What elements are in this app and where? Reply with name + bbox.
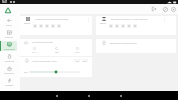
button[interactable]: DEVICE <box>20 16 92 35</box>
button[interactable]: Action 5 <box>57 24 61 28</box>
staticText: BEDROOM THERMOSTAT <box>110 42 137 45</box>
staticText: ROOMS <box>5 36 13 39</box>
staticText: OUTDOOR SENSOR <box>32 41 53 44</box>
staticText: SECURITY <box>4 72 14 75</box>
staticText: LIGHT DIMMING LAMP <box>32 60 57 63</box>
button[interactable]: Home <box>86 93 92 99</box>
staticText: 1013 <box>75 51 80 54</box>
staticText: DEVICE <box>24 22 31 24</box>
button[interactable]: Action 2 <box>39 24 43 28</box>
button[interactable]: CLIMATE <box>1 53 17 63</box>
button[interactable]: Do not disturb <box>162 6 168 12</box>
staticText: CLIMATE <box>5 60 14 63</box>
staticText: DEVICE <box>100 22 107 24</box>
button[interactable]: Action 3 <box>121 24 125 28</box>
button[interactable]: SECURITY <box>1 65 17 75</box>
button[interactable]: Home <box>3 5 12 14</box>
button[interactable]: LIGHT DIMMING LAMP <box>20 57 92 77</box>
staticText: LIVING ROOM CEILING BLINDS <box>35 18 69 21</box>
button[interactable]: Log out <box>151 6 157 12</box>
staticText: BACK <box>6 24 12 27</box>
staticText: 50% <box>24 71 28 74</box>
button[interactable]: 21°C <box>26 47 43 54</box>
staticText: ENERGY <box>5 84 14 87</box>
button[interactable]: Action 5 <box>133 24 137 28</box>
staticText: ON <box>76 60 79 62</box>
staticText: OFF <box>83 60 87 62</box>
button[interactable]: Action 1 <box>109 24 113 28</box>
button[interactable]: Settings <box>170 6 176 12</box>
button[interactable]: Back <box>54 93 60 99</box>
button[interactable]: LIGHTING <box>1 41 17 51</box>
button[interactable]: Recent apps <box>118 93 124 99</box>
button[interactable]: ON <box>74 59 80 62</box>
button[interactable]: More options <box>86 18 90 22</box>
staticText: KITCHEN WINDOW LAMP SWITCH <box>111 18 148 21</box>
button[interactable]: Action 3 <box>45 24 49 28</box>
button[interactable]: Action 1 <box>33 24 37 28</box>
staticText: 48% <box>55 51 59 54</box>
button[interactable]: BEDROOM THERMOSTAT <box>96 39 176 53</box>
button[interactable]: Action 4 <box>51 24 55 28</box>
button[interactable]: ROOMS <box>1 29 17 39</box>
button[interactable]: BACK <box>1 17 17 27</box>
button[interactable]: OUTDOOR SENSOR <box>20 39 92 56</box>
button[interactable]: 48% <box>48 47 65 54</box>
button[interactable]: OFF <box>82 59 88 62</box>
button[interactable] <box>30 70 80 74</box>
staticText: 9:41 <box>2 0 8 4</box>
staticText: 21°C <box>32 51 37 54</box>
button[interactable]: Action 2 <box>115 24 119 28</box>
button[interactable]: More options <box>162 18 166 22</box>
button[interactable]: Action 4 <box>127 24 131 28</box>
button[interactable]: ENERGY <box>1 77 17 87</box>
button[interactable]: DEVICE <box>96 16 176 35</box>
staticText: LIGHTING <box>4 48 15 51</box>
button[interactable]: 1013 <box>69 47 86 54</box>
